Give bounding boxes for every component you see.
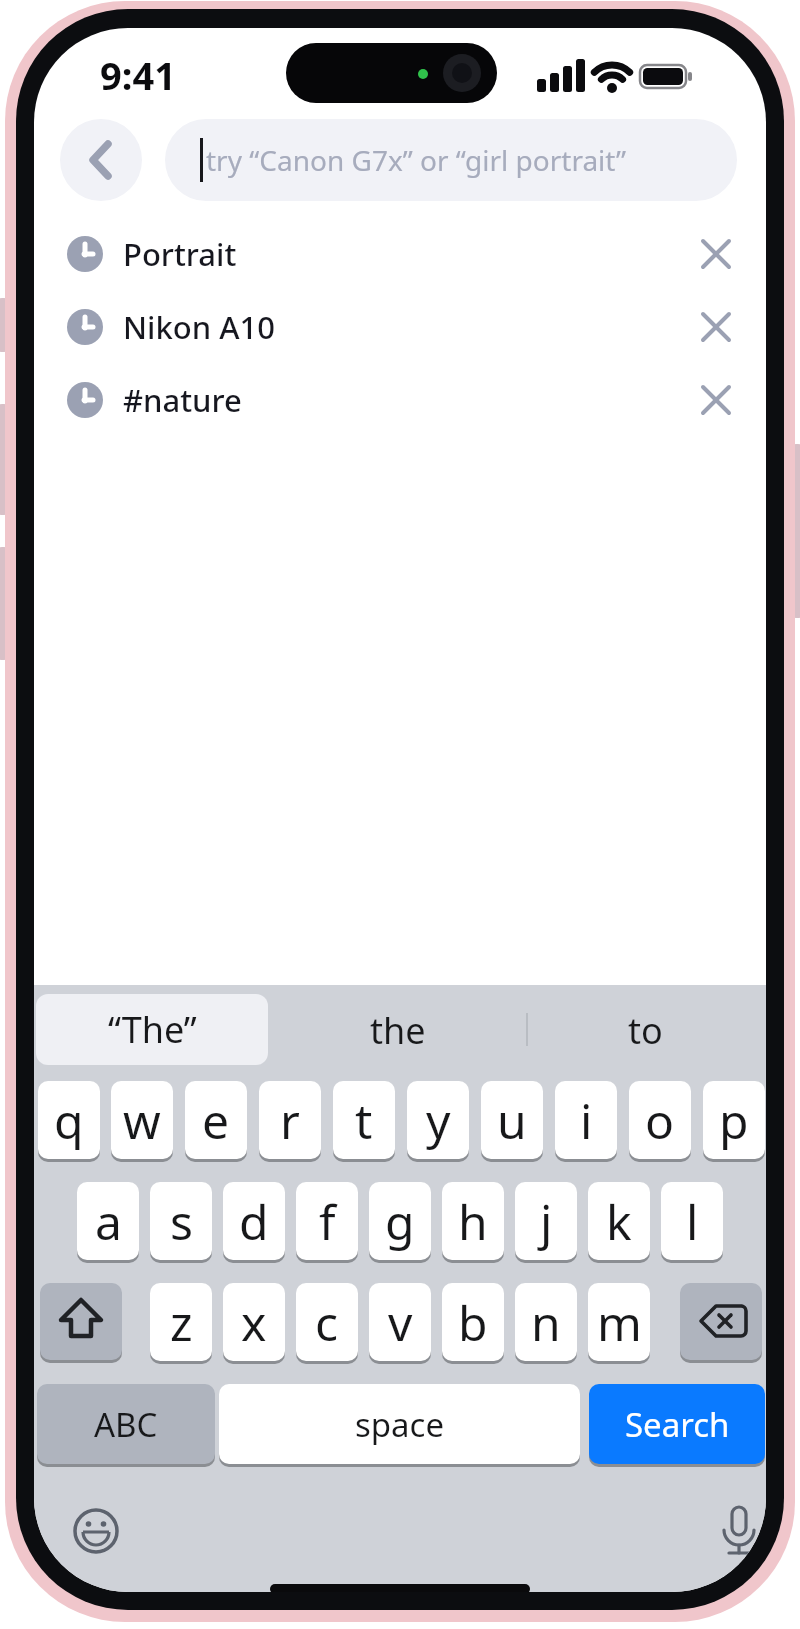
staticText: y	[426, 1088, 451, 1153]
button[interactable]: q	[38, 1081, 100, 1159]
button[interactable]: f	[296, 1182, 358, 1260]
staticText: b	[458, 1290, 488, 1355]
button[interactable]	[701, 239, 731, 269]
button[interactable]: x	[223, 1283, 285, 1361]
button[interactable]: e	[185, 1081, 247, 1159]
staticText: p	[719, 1088, 749, 1153]
staticText: r	[280, 1088, 300, 1153]
button[interactable]	[60, 119, 142, 201]
button[interactable]: o	[629, 1081, 691, 1159]
button[interactable]: d	[223, 1182, 285, 1260]
staticText: m	[597, 1290, 642, 1355]
staticText: a	[95, 1189, 122, 1254]
button[interactable]: a	[77, 1182, 139, 1260]
staticText: g	[385, 1189, 415, 1254]
button[interactable]: try “Canon G7x” or “girl portrait”	[165, 119, 737, 201]
button[interactable]: b	[442, 1283, 504, 1361]
staticText: e	[202, 1088, 230, 1153]
staticText: v	[388, 1290, 413, 1355]
staticText: ABC	[94, 1402, 158, 1447]
button[interactable]: m	[588, 1283, 650, 1361]
staticText: 9:41	[100, 49, 176, 101]
staticText: u	[497, 1088, 527, 1153]
button[interactable]: “The”	[36, 994, 268, 1065]
button[interactable]: k	[588, 1182, 650, 1260]
staticText: l	[686, 1189, 699, 1254]
button[interactable]: Nikon A10	[34, 290, 766, 363]
button[interactable]: s	[150, 1182, 212, 1260]
button[interactable]: Portrait	[34, 217, 766, 290]
button[interactable]	[40, 1283, 122, 1360]
button[interactable]	[715, 1505, 763, 1561]
staticText: h	[458, 1189, 488, 1254]
staticText: d	[239, 1189, 269, 1254]
button[interactable]: space	[219, 1384, 580, 1464]
staticText: “The”	[108, 1005, 197, 1054]
button[interactable]: n	[515, 1283, 577, 1361]
button[interactable]: z	[150, 1283, 212, 1361]
button[interactable]: c	[296, 1283, 358, 1361]
staticText: q	[54, 1088, 84, 1153]
staticText: i	[580, 1088, 593, 1153]
button[interactable]: y	[407, 1081, 469, 1159]
button[interactable]: h	[442, 1182, 504, 1260]
staticText: w	[123, 1088, 161, 1153]
staticText: n	[531, 1290, 561, 1355]
button[interactable]: v	[369, 1283, 431, 1361]
staticText: j	[540, 1189, 553, 1254]
button[interactable]: i	[555, 1081, 617, 1159]
staticText: try “Canon G7x” or “girl portrait”	[206, 141, 627, 179]
staticText: c	[315, 1290, 339, 1355]
staticText: s	[170, 1189, 193, 1254]
button[interactable]: #nature	[34, 363, 766, 436]
staticText: space	[355, 1402, 445, 1447]
button[interactable]: g	[369, 1182, 431, 1260]
staticText: to	[628, 1006, 663, 1055]
staticText: z	[170, 1290, 193, 1355]
staticText: Search	[625, 1402, 730, 1447]
button[interactable]: w	[111, 1081, 173, 1159]
staticText: o	[645, 1088, 675, 1153]
button[interactable]: Search	[589, 1384, 765, 1464]
button[interactable]	[701, 312, 731, 342]
staticText: Portrait	[123, 233, 237, 275]
staticText: k	[606, 1189, 632, 1254]
button[interactable]: ABC	[37, 1384, 215, 1464]
button[interactable]: to	[579, 1002, 711, 1058]
staticText: x	[241, 1290, 267, 1355]
button[interactable]: t	[333, 1081, 395, 1159]
button[interactable]	[701, 385, 731, 415]
staticText: t	[355, 1088, 373, 1153]
button[interactable]: p	[703, 1081, 765, 1159]
staticText: f	[319, 1189, 336, 1254]
staticText: #nature	[123, 379, 242, 421]
button[interactable]: r	[259, 1081, 321, 1159]
staticText: the	[370, 1006, 426, 1055]
button[interactable]: j	[515, 1182, 577, 1260]
button[interactable]: the	[332, 1002, 464, 1058]
button[interactable]: l	[661, 1182, 723, 1260]
button[interactable]	[680, 1283, 762, 1360]
staticText: Nikon A10	[123, 306, 275, 348]
button[interactable]: u	[481, 1081, 543, 1159]
button[interactable]	[72, 1507, 120, 1555]
